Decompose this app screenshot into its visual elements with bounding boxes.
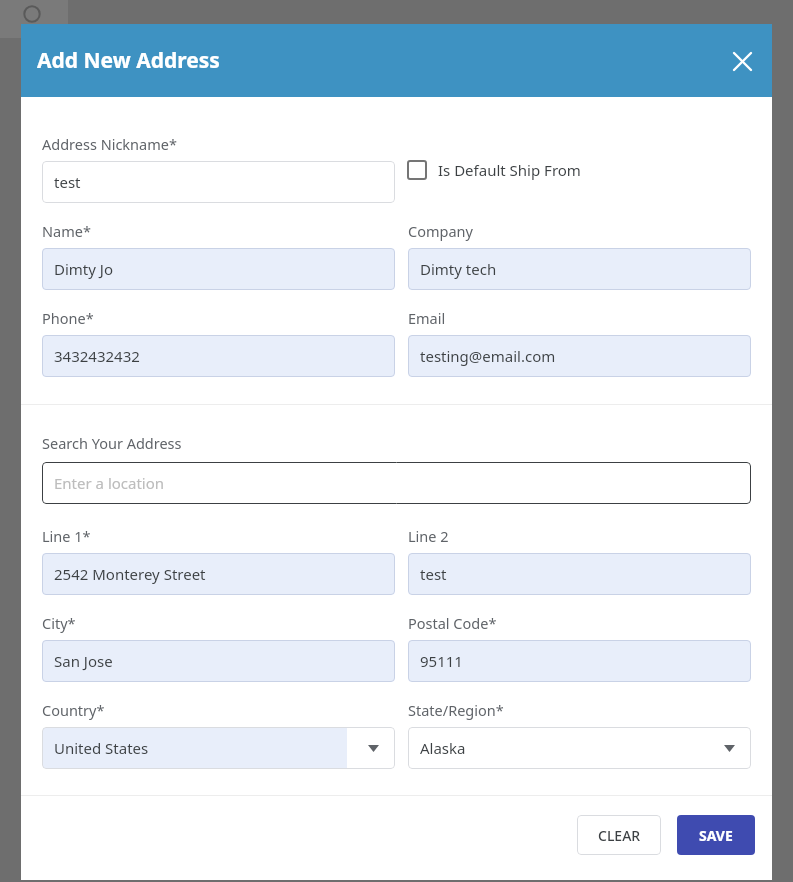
staticText: CLEAR: [598, 826, 641, 845]
staticText: Name*: [42, 221, 91, 241]
staticText: United States: [54, 738, 149, 758]
button[interactable]: San Jose: [42, 640, 395, 682]
button[interactable]: 2542 Monterey Street: [42, 553, 395, 595]
button[interactable]: Is Default Ship From: [408, 160, 581, 180]
staticText: 95111: [420, 651, 463, 671]
staticText: Company: [408, 221, 473, 241]
staticText: Postal Code*: [408, 613, 497, 633]
staticText: Line 1*: [42, 526, 91, 546]
staticText: SAVE: [699, 826, 733, 845]
staticText: State/Region*: [408, 700, 504, 720]
button[interactable]: Close: [720, 39, 764, 83]
staticText: Enter a location: [54, 473, 165, 493]
button[interactable]: SAVE: [677, 815, 755, 855]
staticText: Line 2: [408, 526, 449, 546]
staticText: San Jose: [54, 651, 113, 671]
button[interactable]: 95111: [408, 640, 751, 682]
button[interactable]: Dimty Jo: [42, 248, 395, 290]
staticText: test: [420, 564, 447, 584]
staticText: Is Default Ship From: [438, 160, 581, 180]
staticText: Country*: [42, 700, 105, 720]
staticText: Alaska: [420, 738, 466, 758]
staticText: test: [54, 172, 81, 192]
button[interactable]: 3432432432: [42, 335, 395, 377]
button[interactable]: testing@email.com: [408, 335, 751, 377]
staticText: Phone*: [42, 308, 94, 328]
staticText: 3432432432: [54, 346, 140, 366]
button[interactable]: Enter a location: [42, 462, 751, 504]
staticText: City*: [42, 613, 76, 633]
staticText: Dimty tech: [420, 259, 497, 279]
button[interactable]: Alaska: [408, 727, 751, 769]
button[interactable]: United States: [42, 727, 395, 769]
staticText: 2542 Monterey Street: [54, 564, 206, 584]
staticText: Add New Address: [37, 46, 220, 75]
button[interactable]: CLEAR: [577, 815, 661, 855]
staticText: Address Nickname*: [42, 134, 177, 154]
staticText: Dimty Jo: [54, 259, 113, 279]
button[interactable]: test: [42, 161, 395, 203]
staticText: testing@email.com: [420, 346, 556, 366]
button[interactable]: Dimty tech: [408, 248, 751, 290]
staticText: Email: [408, 308, 446, 328]
staticText: Search Your Address: [42, 433, 182, 453]
button[interactable]: test: [408, 553, 751, 595]
